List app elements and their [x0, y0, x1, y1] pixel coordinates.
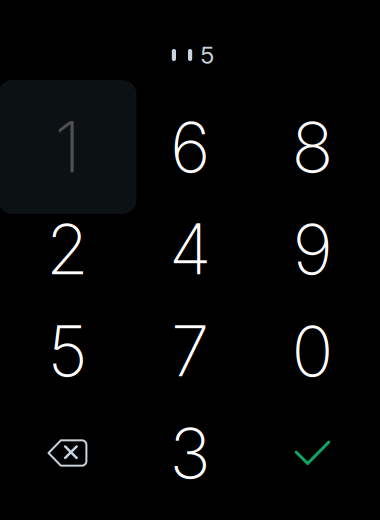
- staticText: 0: [292, 309, 334, 393]
- button[interactable]: 3: [129, 402, 251, 504]
- button[interactable]: Confirm: [251, 402, 374, 504]
- button[interactable]: 0: [251, 300, 374, 402]
- staticText: 9: [293, 207, 333, 291]
- button[interactable]: 7: [129, 300, 251, 402]
- staticText: 5: [200, 40, 214, 69]
- button[interactable]: 9: [251, 198, 374, 300]
- staticText: 1: [54, 105, 80, 189]
- staticText: 6: [170, 105, 210, 189]
- staticText: 8: [292, 105, 334, 189]
- staticText: 5: [47, 309, 87, 393]
- button[interactable]: 4: [129, 198, 251, 300]
- button[interactable]: 8: [251, 96, 374, 198]
- staticText: 4: [169, 207, 211, 291]
- button[interactable]: 6: [129, 96, 251, 198]
- staticText: 3: [169, 411, 210, 495]
- staticText: 7: [171, 309, 209, 393]
- button[interactable]: 5: [6, 300, 129, 402]
- staticText: 2: [46, 207, 89, 291]
- button[interactable]: Delete: [6, 402, 129, 504]
- button[interactable]: 1: [6, 96, 129, 198]
- button[interactable]: 2: [6, 198, 129, 300]
